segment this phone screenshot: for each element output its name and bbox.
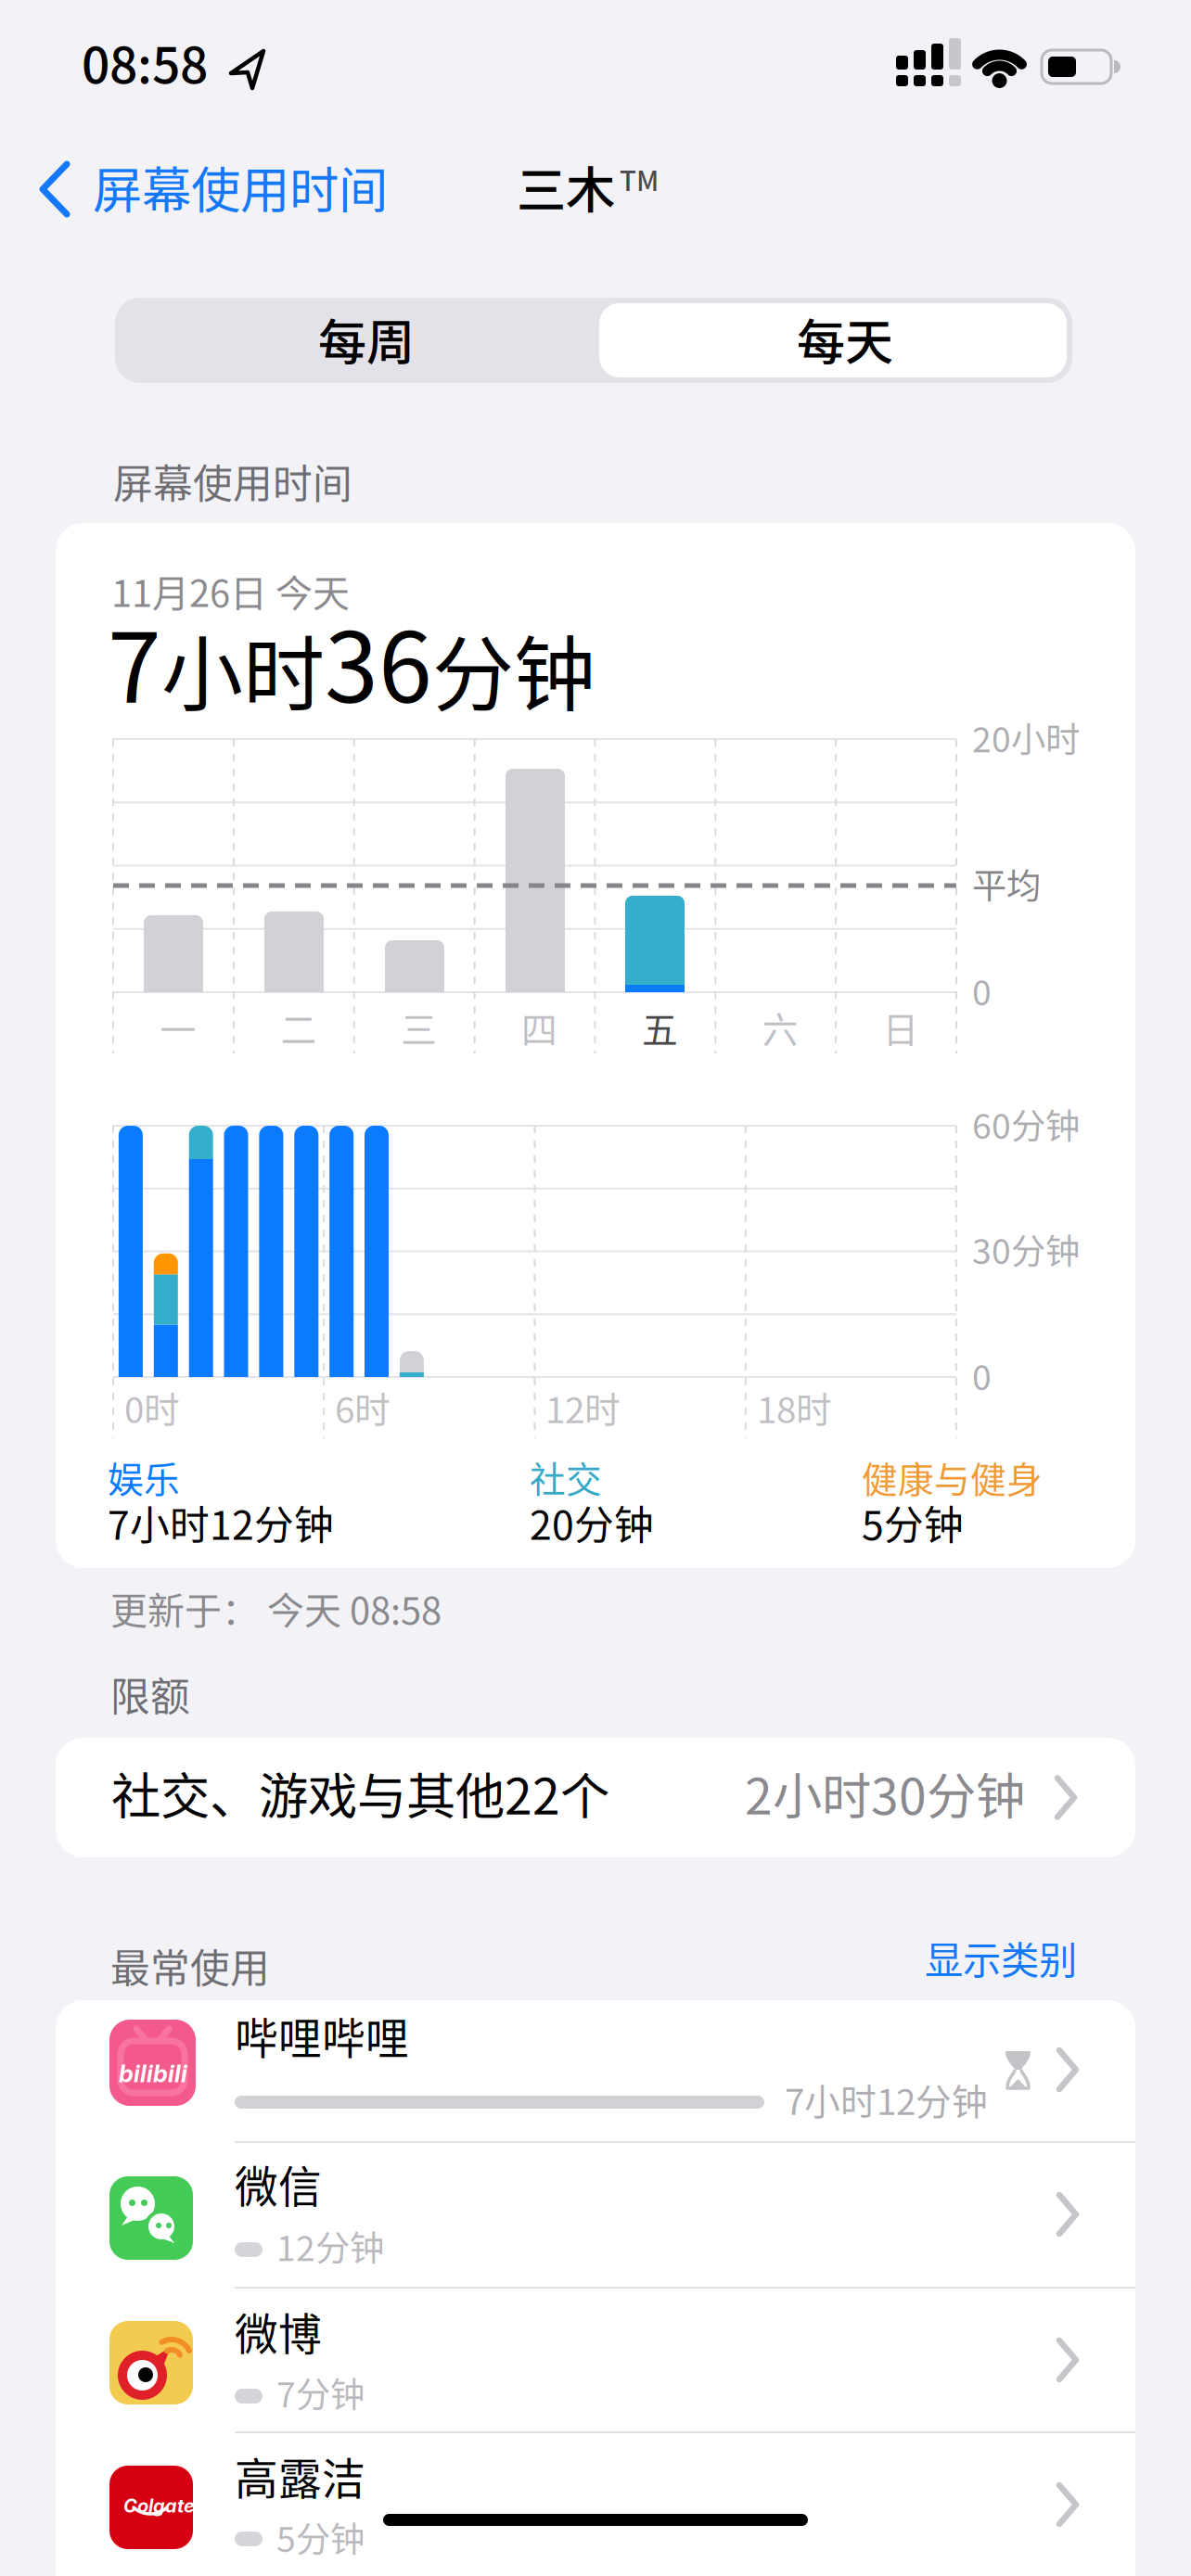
staticText: 哔哩哔哩 [235, 2004, 409, 2067]
staticText: 7小时12分钟 [785, 2073, 988, 2125]
staticText: 高露洁 [235, 2444, 365, 2507]
staticText: 四 [521, 1001, 557, 1053]
staticText: 7分钟 [276, 2367, 365, 2418]
staticText: 最常使用 [110, 1937, 270, 1994]
staticText: TM [620, 159, 659, 199]
staticText: 健康与健身 [862, 1451, 1043, 1503]
staticText: 微信 [235, 2152, 322, 2215]
staticText: 0 [972, 1350, 992, 1400]
staticText: 5分钟 [276, 2512, 365, 2562]
staticText: 三 [401, 1001, 437, 1053]
staticText: 0 [972, 965, 992, 1015]
staticText: 平均 [972, 859, 1041, 909]
staticText: 屏幕使用时间 [113, 453, 352, 510]
staticText: 11月26日 今天 [111, 564, 350, 617]
staticText: 6时 [335, 1382, 391, 1434]
staticText: 20分钟 [530, 1494, 654, 1551]
staticText: 六 [762, 1001, 798, 1053]
staticText: 0时 [124, 1382, 180, 1434]
staticText: 18时 [757, 1382, 832, 1434]
staticText: 二 [280, 1001, 317, 1053]
staticText: 30分钟 [972, 1224, 1080, 1274]
staticText: 12时 [545, 1382, 621, 1434]
staticText: 限额 [110, 1665, 190, 1723]
staticText: bilibili [119, 2060, 187, 2088]
staticText: 2小时30分钟 [745, 1757, 1025, 1829]
staticText: Colgate [123, 2494, 195, 2517]
staticText: 屏幕使用时间 [93, 151, 388, 223]
staticText: 社交 [530, 1451, 602, 1503]
staticText: 20小时 [972, 712, 1080, 762]
staticText: 一 [160, 1001, 196, 1053]
staticText: 7小时12分钟 [108, 1494, 334, 1551]
staticText: 微博 [235, 2300, 322, 2362]
staticText: 08:58 [82, 26, 208, 98]
staticText: 显示类别 [925, 1930, 1077, 1985]
staticText: 12分钟 [276, 2221, 384, 2271]
staticText: 娱乐 [108, 1451, 180, 1503]
staticText: 7小时36分钟 [108, 593, 595, 729]
staticText: 每周 [318, 304, 415, 374]
staticText: 每天 [797, 304, 893, 374]
staticText: 日 [883, 1001, 919, 1053]
staticText: 社交、游戏与其他22个 [111, 1757, 609, 1829]
staticText: 60分钟 [972, 1099, 1080, 1149]
staticText: 三木 [517, 151, 615, 223]
staticText: 更新于： 今天 08:58 [110, 1581, 442, 1635]
staticText: 5分钟 [862, 1494, 964, 1551]
staticText: 五 [642, 1001, 678, 1053]
